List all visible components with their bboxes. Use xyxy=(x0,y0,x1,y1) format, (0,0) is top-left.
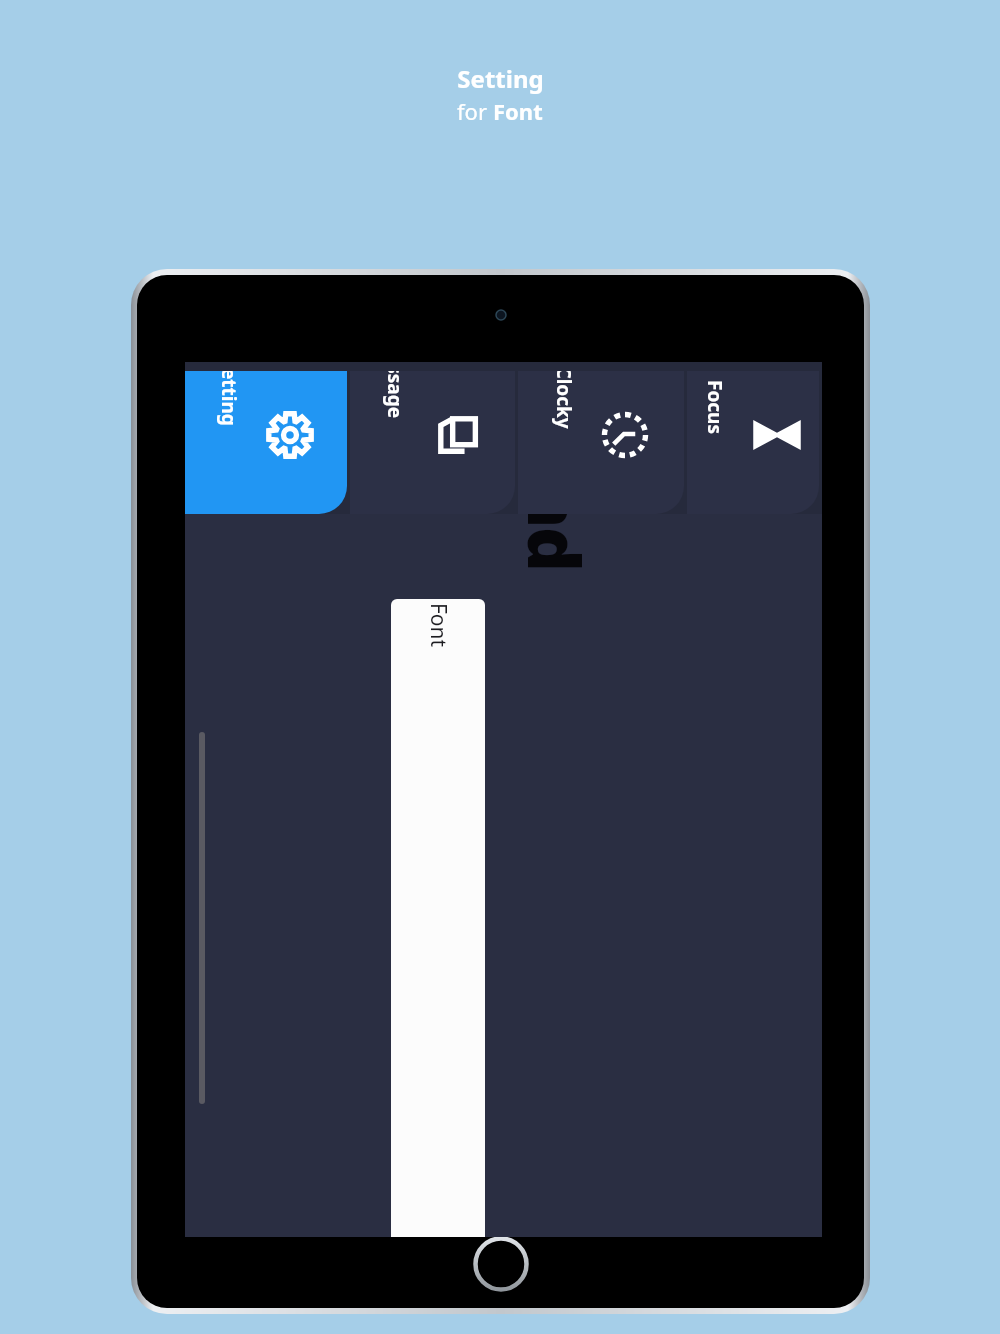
staticText: Clocky xyxy=(550,402,576,465)
staticText: Change Font: xyxy=(424,619,453,756)
other: Clock xyxy=(598,408,652,462)
staticText: Focus xyxy=(702,408,728,462)
other: Messages xyxy=(430,408,484,462)
other: Setting xyxy=(263,408,317,462)
staticText: Setting xyxy=(215,399,241,468)
button[interactable]: Message xyxy=(350,371,515,514)
button[interactable]: Setting xyxy=(185,371,347,514)
button[interactable]: Clocky xyxy=(518,371,684,514)
staticText: Message xyxy=(382,393,408,477)
staticText: for xyxy=(457,96,493,126)
other: Focus xyxy=(750,408,804,462)
staticText: Font xyxy=(493,96,543,126)
button[interactable]: Focus xyxy=(687,371,819,514)
staticText: Setting xyxy=(457,62,544,95)
button[interactable]: Change Font: xyxy=(391,599,485,1237)
